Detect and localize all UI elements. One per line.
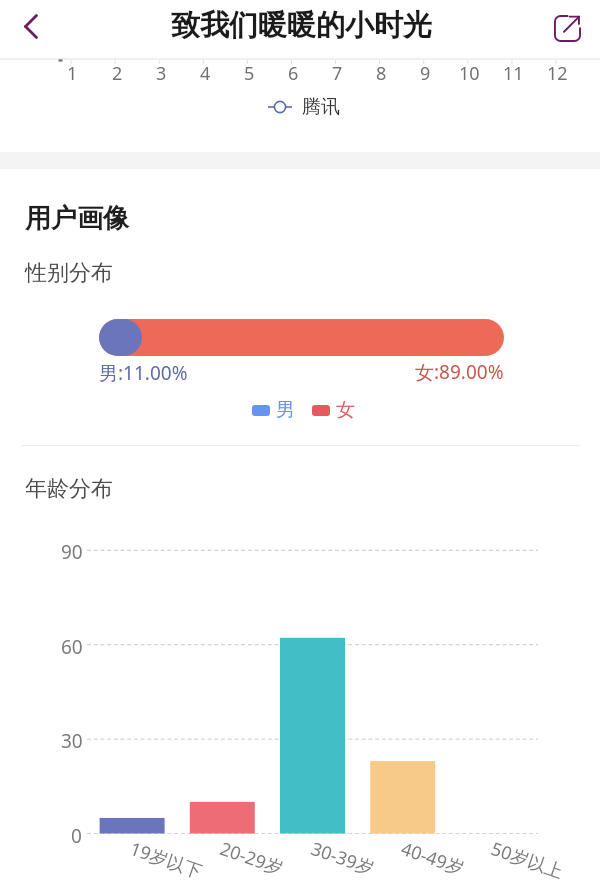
- staticText: 5: [244, 61, 255, 86]
- staticText: 男: [276, 398, 295, 422]
- staticText: 女:89.00%: [415, 359, 504, 385]
- staticText: 腾讯: [302, 95, 340, 119]
- staticText: 12: [547, 61, 568, 86]
- staticText: 1: [67, 61, 78, 86]
- staticText: 年龄分布: [25, 475, 113, 503]
- staticText: 30: [61, 728, 83, 754]
- staticText: 40-49岁: [398, 836, 467, 881]
- staticText: 6: [288, 61, 299, 86]
- staticText: 致我们暖暖的小时光: [171, 7, 432, 44]
- staticText: 8: [376, 61, 387, 86]
- staticText: 30-39岁: [308, 836, 377, 881]
- staticText: 90: [61, 539, 83, 565]
- staticText: 20-29岁: [217, 836, 286, 881]
- staticText: 性别分布: [25, 259, 113, 287]
- staticText: 男:11.00%: [99, 360, 188, 386]
- staticText: 用户画像: [25, 202, 129, 235]
- staticText: 0: [71, 823, 82, 849]
- staticText: 9: [420, 61, 431, 86]
- button[interactable]: Open in new window: [541, 2, 593, 54]
- staticText: 4: [200, 61, 211, 86]
- staticText: 3: [156, 61, 167, 86]
- staticText: 女: [336, 398, 355, 422]
- staticText: 60: [61, 634, 83, 660]
- staticText: 11: [503, 61, 524, 86]
- staticText: 10: [459, 61, 480, 86]
- staticText: 50岁以上: [488, 836, 567, 882]
- staticText: 2: [112, 61, 123, 86]
- button[interactable]: Back: [5, 0, 57, 52]
- staticText: 7: [332, 61, 343, 86]
- staticText: 19岁以下: [127, 836, 206, 882]
